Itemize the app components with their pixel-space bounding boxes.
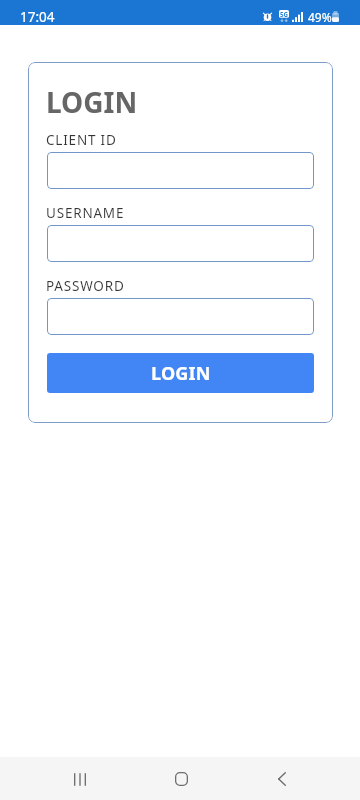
button[interactable]: Recent apps bbox=[56, 758, 104, 800]
button[interactable] bbox=[47, 225, 314, 262]
staticText: CLIENT ID bbox=[46, 131, 117, 149]
staticText: 17:04 bbox=[20, 8, 55, 26]
button[interactable]: LOGIN bbox=[47, 353, 314, 393]
button[interactable]: Home bbox=[157, 757, 205, 800]
button[interactable] bbox=[47, 152, 314, 189]
button[interactable] bbox=[47, 298, 314, 335]
staticText: 49% bbox=[308, 9, 332, 25]
staticText: PASSWORD bbox=[46, 277, 125, 295]
staticText: USERNAME bbox=[46, 204, 125, 222]
staticText: LOGIN bbox=[151, 361, 211, 386]
staticText: LOGIN bbox=[46, 83, 138, 121]
staticText: 5G bbox=[280, 10, 289, 18]
button[interactable]: Back bbox=[258, 757, 306, 800]
